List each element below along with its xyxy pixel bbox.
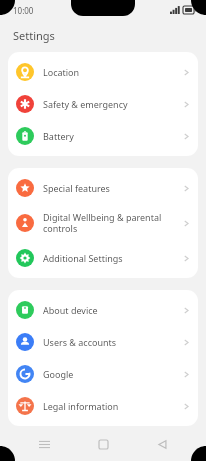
staticText: Google [43, 368, 177, 380]
button[interactable]: Battery [8, 120, 198, 152]
button[interactable]: Back [147, 429, 177, 459]
staticText: Users & accounts [43, 336, 177, 348]
button[interactable]: Special features [8, 172, 198, 204]
button[interactable]: Location [8, 56, 198, 88]
staticText: Battery [43, 130, 177, 142]
button[interactable]: Safety & emergency [8, 88, 198, 120]
button[interactable]: Recent apps [29, 429, 59, 459]
button[interactable]: Home [88, 429, 118, 459]
staticText: Location [43, 66, 177, 78]
button[interactable]: Additional Settings [8, 242, 198, 274]
button[interactable]: About device [8, 294, 198, 326]
staticText: 10:00 [13, 5, 34, 16]
staticText: Additional Settings [43, 252, 177, 264]
button[interactable]: Digital Wellbeing & parental controls [8, 204, 198, 242]
staticText: About device [43, 304, 177, 316]
staticText: Legal information [43, 400, 177, 412]
button[interactable]: Legal information [8, 390, 198, 422]
button[interactable]: Google [8, 358, 198, 390]
staticText: Special features [43, 182, 177, 194]
staticText: Settings [13, 28, 55, 43]
staticText: Safety & emergency [43, 98, 177, 110]
staticText: Digital Wellbeing & parental controls [43, 211, 177, 235]
button[interactable]: Users & accounts [8, 326, 198, 358]
